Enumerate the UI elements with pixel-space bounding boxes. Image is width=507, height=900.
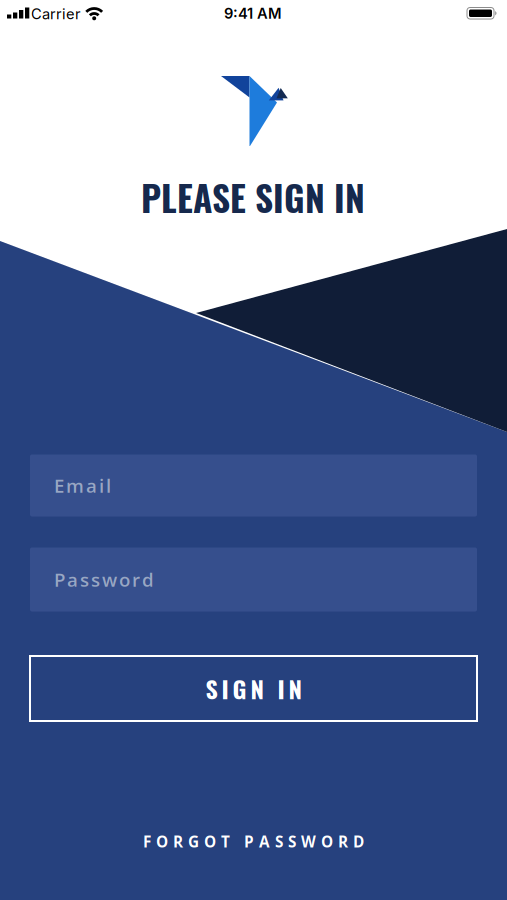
button[interactable]: F O R G O T P A S S W O R D [143, 831, 364, 852]
button[interactable]: P a s s w o r d [30, 547, 477, 611]
staticText: Carrier [31, 5, 81, 23]
staticText: 9:41 AM [224, 5, 282, 22]
staticText: F O R G O T P A S S W O R D [143, 831, 364, 852]
staticText: E m a i l [54, 473, 111, 498]
button[interactable]: E m a i l [30, 454, 477, 516]
staticText: S I G N I N [205, 671, 301, 706]
staticText: P a s s w o r d [54, 567, 154, 592]
staticText: PLEASE SIGN IN [141, 171, 365, 223]
button[interactable]: S I G N I N [30, 656, 477, 721]
